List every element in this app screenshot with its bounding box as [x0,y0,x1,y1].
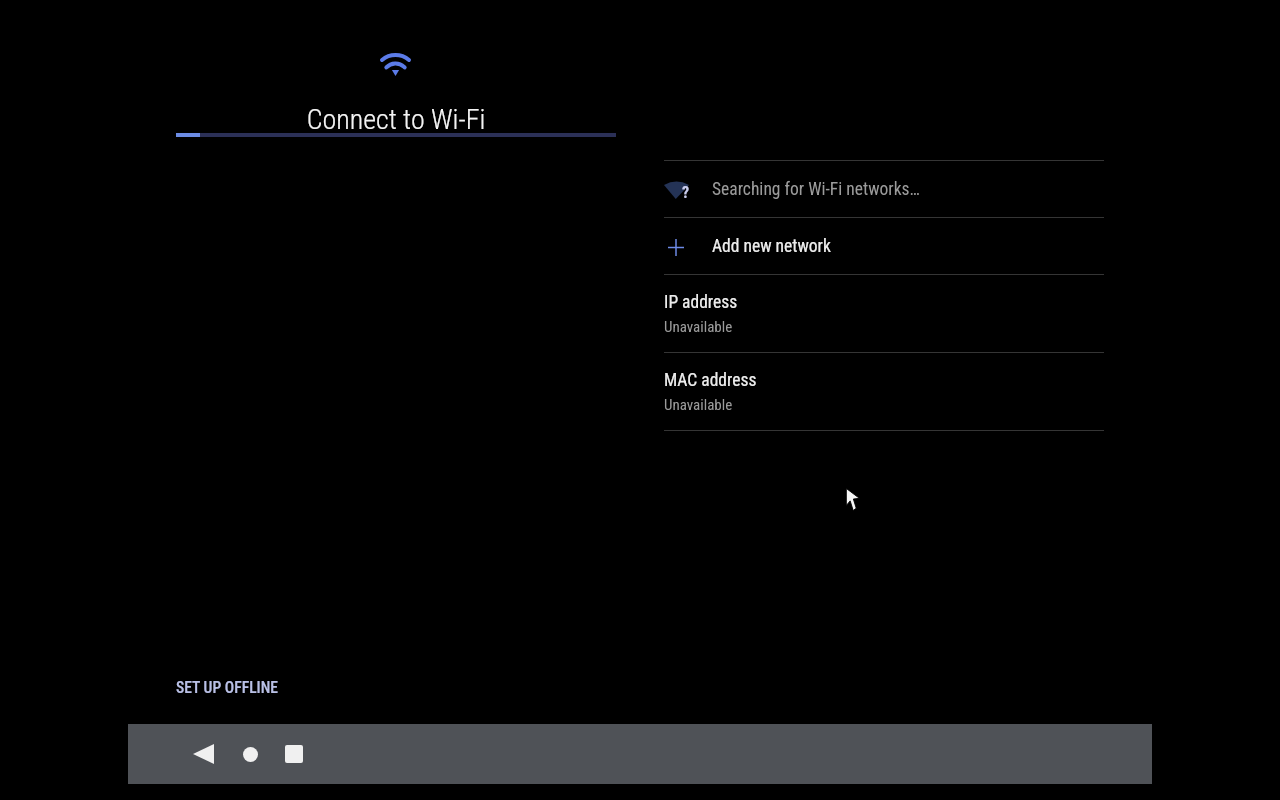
button[interactable]: SET UP OFFLINE [168,673,286,703]
staticText: ? [682,183,690,202]
button[interactable]: Back [180,724,226,784]
staticText: IP address [664,292,738,313]
staticText: MAC address [664,370,757,391]
button[interactable]: IP address [664,275,1104,352]
button[interactable]: Recent apps [271,724,317,784]
staticText: Unavailable [664,396,733,414]
staticText: Searching for Wi-Fi networks… [712,179,920,200]
staticText: Add new network [712,236,831,257]
button[interactable]: Add new network [664,218,1104,274]
button[interactable]: MAC address [664,353,1104,430]
staticText: Connect to Wi-Fi [176,103,616,136]
staticText: Unavailable [664,318,733,336]
button[interactable]: Home [227,724,273,784]
button[interactable]: ? [664,161,1104,217]
staticText: SET UP OFFLINE [176,679,278,697]
